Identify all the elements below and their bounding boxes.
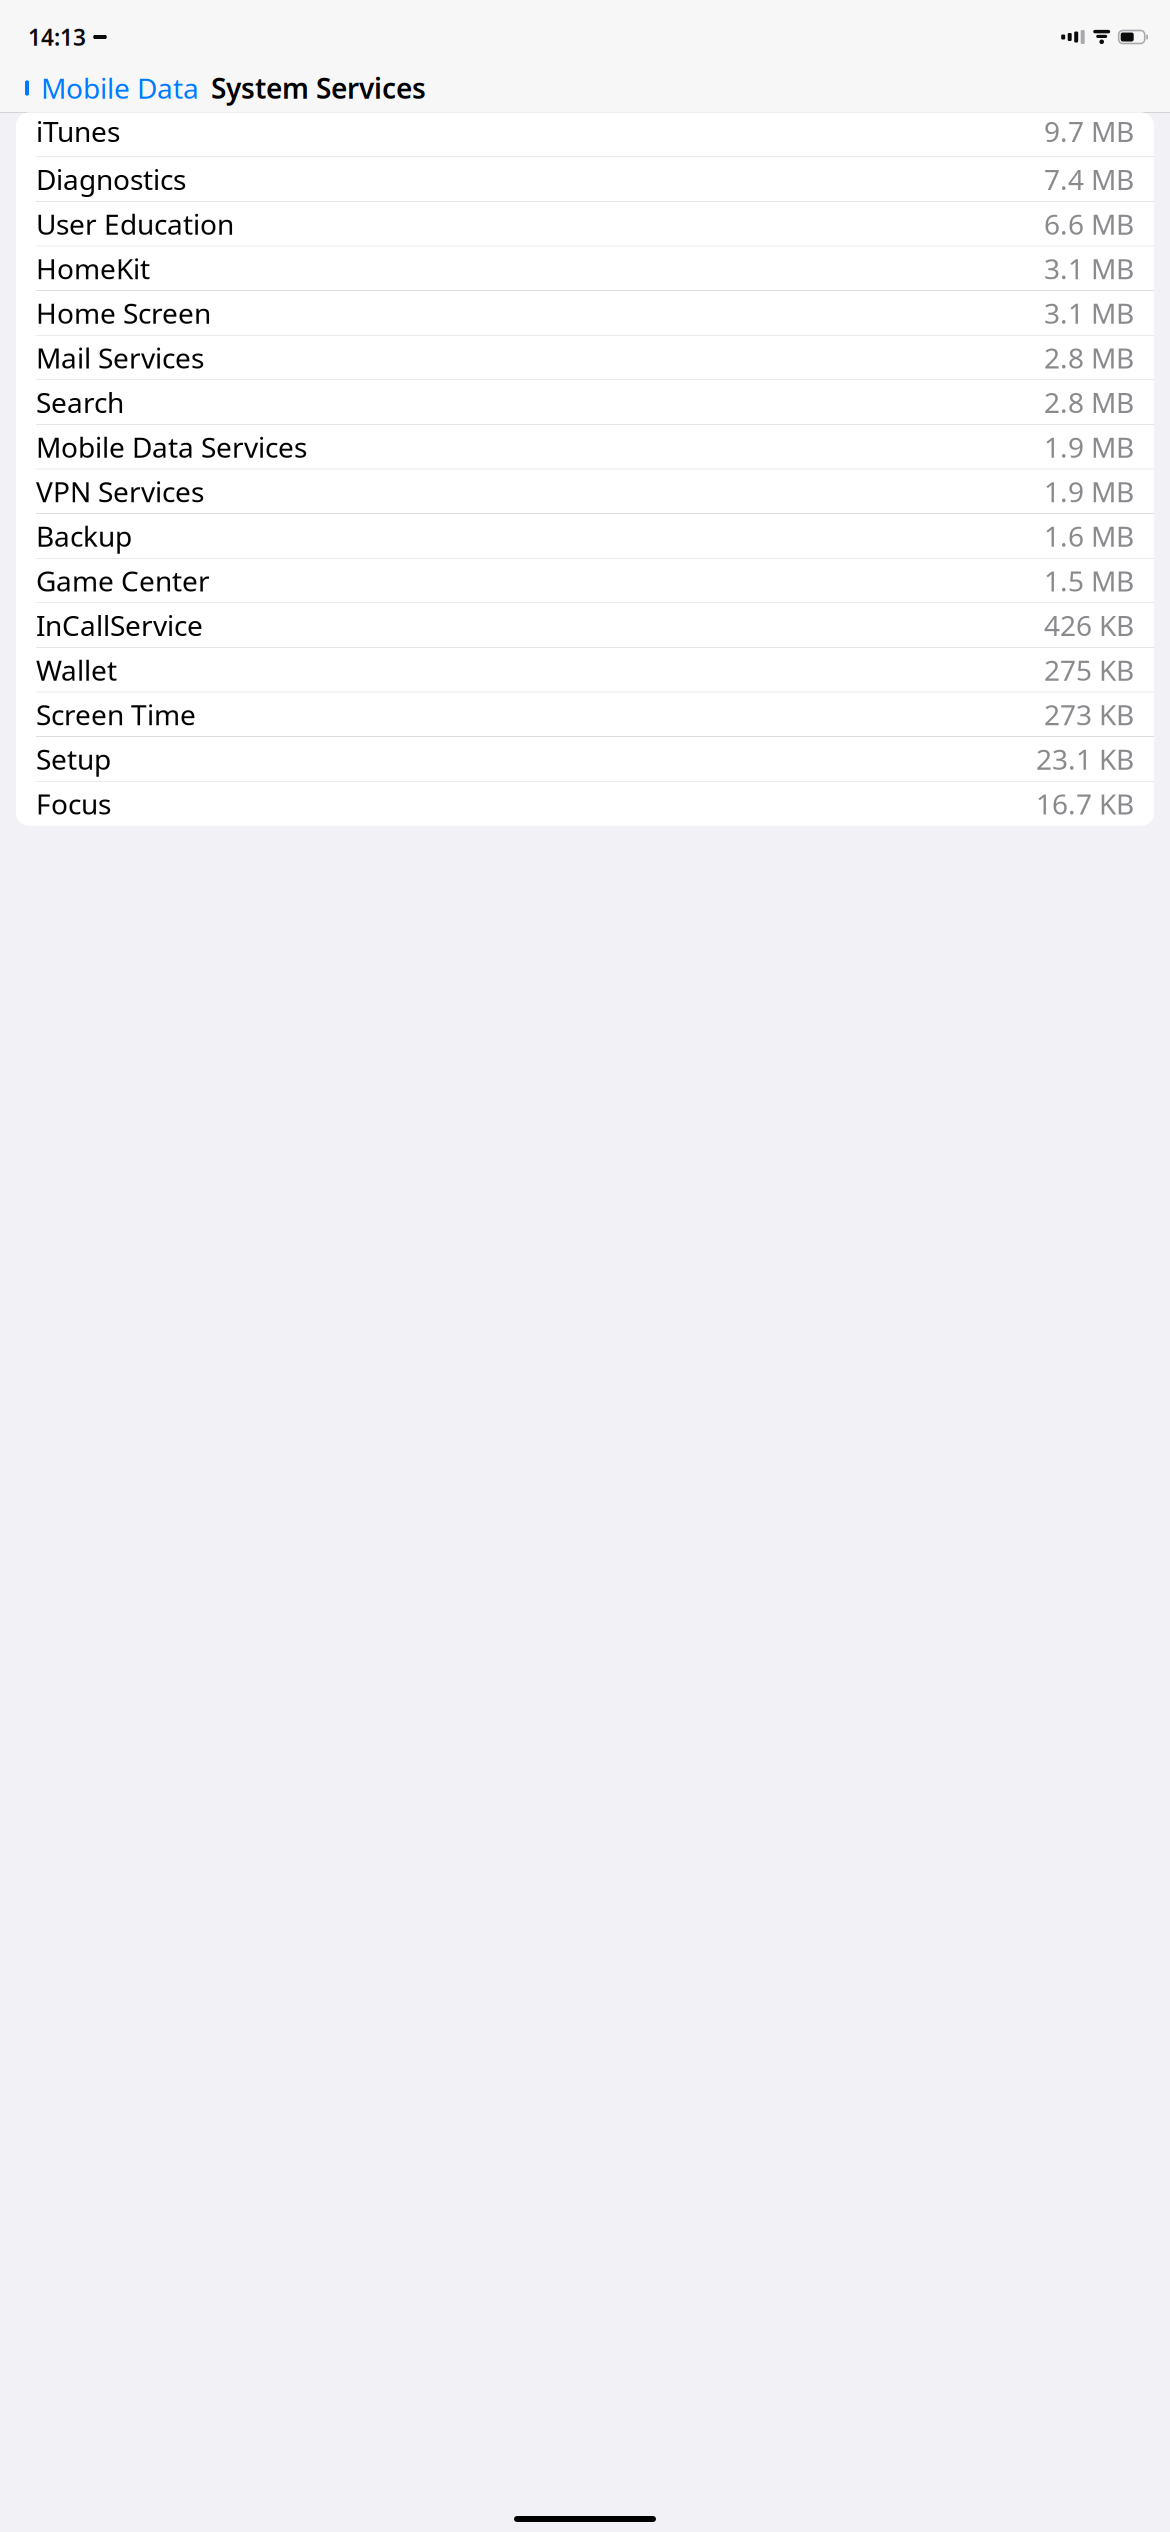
staticText: Home Screen bbox=[36, 294, 211, 332]
button[interactable]: Setup bbox=[16, 737, 1154, 781]
staticText: 1.5 MB bbox=[1044, 562, 1134, 599]
button[interactable]: Mail Services bbox=[16, 336, 1154, 380]
button[interactable]: Home Screen bbox=[16, 291, 1154, 335]
button[interactable]: Game Center bbox=[16, 559, 1154, 603]
staticText: InCallService bbox=[36, 607, 203, 644]
button[interactable]: Focus bbox=[16, 782, 1154, 826]
staticText: Mobile Data bbox=[41, 69, 199, 107]
staticText: 3.1 MB bbox=[1044, 250, 1134, 287]
button[interactable]: InCallService bbox=[16, 603, 1154, 647]
button[interactable]: iTunes bbox=[16, 113, 1154, 157]
button[interactable]: Screen Time bbox=[16, 692, 1154, 736]
staticText: iTunes bbox=[36, 113, 120, 150]
staticText: Search bbox=[36, 384, 124, 421]
staticText: Setup bbox=[36, 740, 111, 778]
staticText: Diagnostics bbox=[36, 161, 186, 198]
staticText: 1.9 MB bbox=[1044, 428, 1134, 465]
button[interactable]: User Education bbox=[16, 202, 1154, 246]
button[interactable]: VPN Services bbox=[16, 469, 1154, 513]
staticText: 1.9 MB bbox=[1044, 473, 1134, 510]
staticText: User Education bbox=[36, 205, 234, 242]
button[interactable]: Search bbox=[16, 380, 1154, 424]
staticText: 2.8 MB bbox=[1044, 339, 1134, 376]
staticText: 2.8 MB bbox=[1044, 384, 1134, 421]
button[interactable]: Diagnostics bbox=[16, 157, 1154, 201]
staticText: HomeKit bbox=[36, 250, 150, 287]
staticText: Backup bbox=[36, 517, 132, 555]
staticText: 23.1 KB bbox=[1036, 740, 1134, 778]
staticText: 275 KB bbox=[1044, 651, 1134, 688]
staticText: VPN Services bbox=[36, 473, 204, 510]
button[interactable]: Backup bbox=[16, 514, 1154, 558]
staticText: 9.7 MB bbox=[1044, 113, 1134, 150]
button[interactable]: Mobile Data Services bbox=[16, 425, 1154, 469]
button[interactable]: HomeKit bbox=[16, 246, 1154, 290]
staticText: 426 KB bbox=[1044, 607, 1134, 644]
button[interactable]: Wallet bbox=[16, 648, 1154, 692]
staticText: 1.6 MB bbox=[1044, 517, 1134, 555]
staticText: System Services bbox=[211, 69, 426, 107]
staticText: 3.1 MB bbox=[1044, 294, 1134, 332]
staticText: 273 KB bbox=[1044, 696, 1134, 733]
staticText: 16.7 KB bbox=[1036, 785, 1134, 822]
staticText: Game Center bbox=[36, 562, 210, 599]
staticText: 14:13 bbox=[28, 22, 86, 52]
staticText: Screen Time bbox=[36, 696, 196, 733]
staticText: Mail Services bbox=[36, 339, 204, 376]
staticText: 6.6 MB bbox=[1044, 205, 1134, 242]
button[interactable]: Mobile Data bbox=[10, 63, 205, 113]
staticText: Wallet bbox=[36, 651, 117, 688]
staticText: 7.4 MB bbox=[1044, 161, 1134, 198]
staticText: Focus bbox=[36, 785, 111, 822]
staticText: Mobile Data Services bbox=[36, 428, 307, 465]
